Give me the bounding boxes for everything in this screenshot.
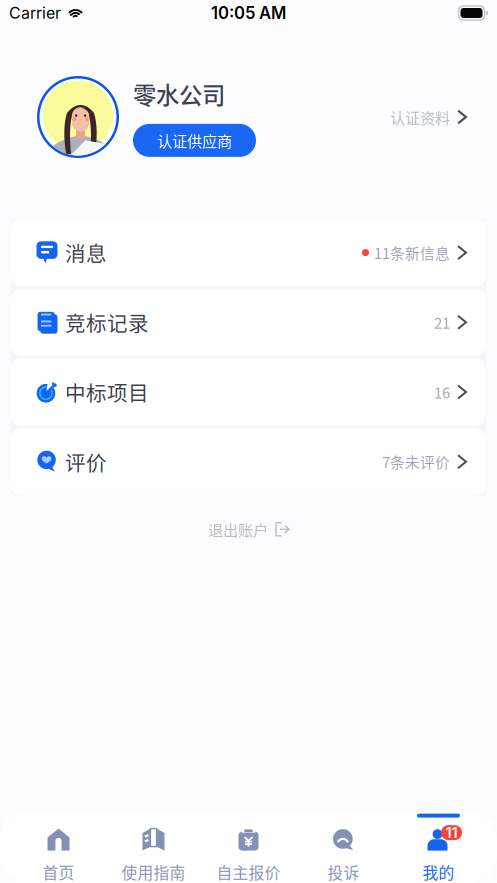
staticText: 认证供应商	[157, 129, 232, 151]
staticText: 评价	[65, 447, 107, 476]
staticText: 首页	[42, 861, 74, 883]
button[interactable]: 认证资料	[390, 106, 467, 128]
staticText: 中标项目	[65, 377, 149, 407]
staticText: 竞标记录	[65, 307, 149, 337]
button[interactable]: 使用指南	[106, 814, 201, 883]
staticText: 投诉	[327, 861, 359, 883]
button[interactable]: 投诉	[296, 814, 391, 883]
staticText: Carrier	[9, 3, 61, 23]
staticText: 11条新信息	[374, 242, 450, 263]
button[interactable]: 评价	[11, 428, 486, 495]
staticText: 我的	[422, 861, 454, 883]
staticText: 10:05 AM	[211, 3, 286, 23]
button[interactable]: 退出账户	[198, 514, 299, 544]
staticText: 自主报价	[216, 861, 280, 883]
staticText: 使用指南	[121, 861, 185, 883]
button[interactable]: 竞标记录	[11, 289, 486, 356]
staticText: 认证资料	[390, 106, 450, 128]
button[interactable]: 消息	[11, 219, 486, 286]
staticText: 16	[434, 381, 450, 403]
staticText: 消息	[65, 238, 107, 267]
staticText: 7条未评价	[382, 451, 450, 472]
staticText: 退出账户	[208, 518, 268, 540]
button[interactable]: 首页	[11, 814, 106, 883]
staticText: 零水公司	[133, 77, 225, 111]
button[interactable]: 11	[391, 814, 486, 883]
button[interactable]: 自主报价	[201, 814, 296, 883]
staticText: 11	[445, 824, 457, 841]
button[interactable]: 认证供应商	[133, 124, 256, 157]
button[interactable]: 中标项目	[11, 358, 486, 426]
staticText: 21	[434, 312, 450, 333]
